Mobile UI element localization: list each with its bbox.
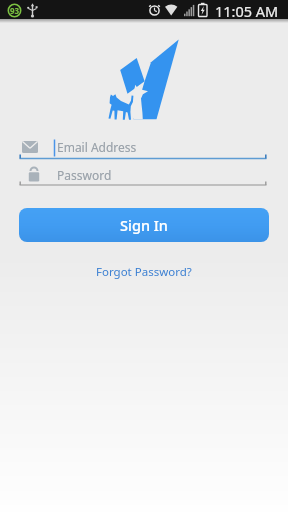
staticText: 11:05 AM (215, 1, 279, 21)
staticText: 93 (10, 5, 20, 16)
staticText: Forgot Password? (96, 264, 192, 280)
button[interactable]: Email Address (19, 136, 267, 160)
staticText: Password (57, 167, 112, 183)
button[interactable]: Sign In (19, 208, 269, 242)
staticText: Sign In (120, 215, 168, 235)
button[interactable]: Password (19, 164, 267, 186)
button[interactable]: Forgot Password? (96, 264, 192, 280)
staticText: Email Address (57, 139, 137, 155)
